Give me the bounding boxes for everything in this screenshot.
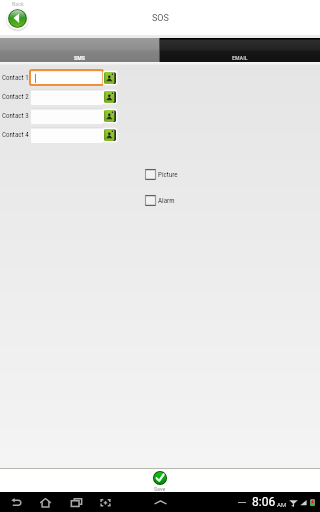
button[interactable]: Pick contact 2 — [104, 91, 116, 103]
button[interactable]: EMAIL — [160, 38, 320, 62]
button[interactable]: Back — [6, 492, 26, 512]
button[interactable]: SMS — [0, 38, 159, 62]
staticText: Picture — [158, 171, 178, 179]
staticText: Save — [154, 485, 166, 492]
staticText: SOS — [152, 13, 169, 24]
staticText: SMS — [74, 54, 86, 61]
button[interactable] — [31, 127, 103, 143]
button[interactable]: Save — [153, 471, 167, 492]
staticText: Contact 2 — [2, 93, 29, 101]
button[interactable]: Alarm — [145, 195, 175, 206]
staticText: Contact 3 — [2, 112, 29, 120]
staticText: Back — [12, 0, 24, 7]
staticText: Alarm — [158, 197, 175, 205]
staticText: Contact 1 — [2, 74, 29, 82]
button[interactable] — [31, 108, 103, 124]
button[interactable]: Pick contact 1 — [104, 72, 116, 84]
button[interactable]: Recent apps — [66, 492, 86, 512]
staticText: Contact 4 — [2, 131, 29, 139]
button[interactable] — [31, 70, 103, 86]
button[interactable]: Pick contact 4 — [104, 129, 116, 141]
button[interactable]: Picture — [145, 169, 178, 180]
staticText: AM — [277, 501, 287, 508]
button[interactable]: Back — [6, 0, 29, 30]
staticText: EMAIL — [232, 54, 248, 61]
staticText: 8:06 — [252, 495, 276, 509]
button[interactable]: Home — [35, 492, 55, 512]
button[interactable]: Screenshot — [95, 492, 115, 512]
button[interactable] — [31, 89, 103, 105]
button[interactable]: Pick contact 3 — [104, 110, 116, 122]
